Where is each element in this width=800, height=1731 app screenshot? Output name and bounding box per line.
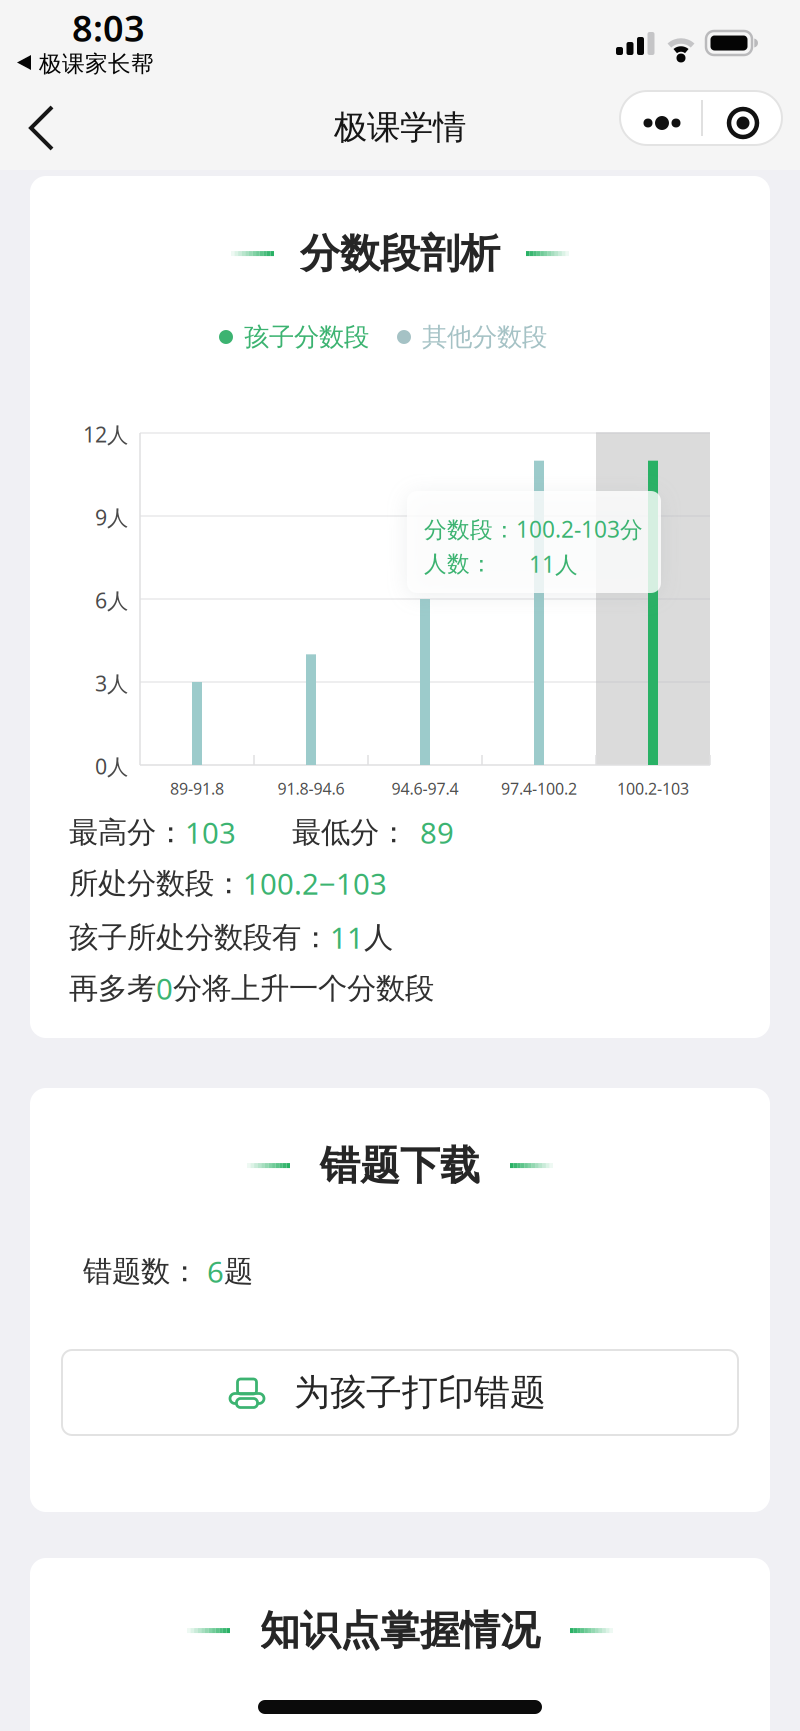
staticText: 91.8-94.6 <box>277 778 344 799</box>
button[interactable] <box>620 91 701 145</box>
staticText: 8:03 <box>72 4 145 52</box>
staticText: 分数段剖析 <box>300 229 500 278</box>
staticText: 0 <box>156 969 173 1008</box>
staticText: 极课学情 <box>334 107 466 148</box>
button[interactable]: 为孩子打印错题 <box>62 1350 800 1731</box>
staticText: 错题下载 <box>320 1141 480 1190</box>
staticText: 97.4-100.2 <box>501 778 577 799</box>
staticText: 100.2-103 <box>617 778 689 799</box>
button[interactable] <box>8 95 78 161</box>
staticText: 9人 <box>95 503 128 531</box>
button[interactable] <box>701 91 782 145</box>
staticText: 极课家长帮 <box>39 50 154 78</box>
staticText: 为孩子打印错题 <box>294 1370 546 1415</box>
button[interactable]: 孩子分数段 <box>219 321 369 352</box>
staticText: 人 <box>364 919 393 955</box>
staticText: 错题数： <box>83 1253 199 1289</box>
staticText: 孩子所处分数段有： <box>69 919 330 955</box>
staticText: 12人 <box>83 420 128 448</box>
staticText: 89 <box>420 813 454 852</box>
staticText: 103 <box>185 813 236 852</box>
staticText: 知识点掌握情况 <box>260 1606 540 1655</box>
staticText: 分数段：100.2-103分 <box>424 514 643 544</box>
button[interactable]: 其他分数段 <box>397 321 547 352</box>
staticText: 最高分： <box>69 814 185 850</box>
staticText: 6人 <box>95 586 128 614</box>
staticText: 100.2−103 <box>243 864 387 903</box>
staticText: 其他分数段 <box>422 321 547 352</box>
staticText: 最低分： <box>292 814 408 850</box>
staticText: 11 <box>330 918 364 957</box>
staticText: 人数： <box>424 550 493 578</box>
staticText: 6 <box>207 1252 224 1291</box>
staticText: 11人 <box>529 549 578 579</box>
staticText: 题 <box>224 1253 253 1289</box>
staticText: 0人 <box>95 752 128 780</box>
staticText: 3人 <box>95 669 128 697</box>
staticText: 94.6-97.4 <box>391 778 458 799</box>
staticText: 所处分数段： <box>69 865 243 901</box>
staticText: 再多考 <box>69 970 156 1006</box>
staticText: 89-91.8 <box>170 778 224 799</box>
staticText: 分将上升一个分数段 <box>173 970 434 1006</box>
staticText: 孩子分数段 <box>244 321 369 352</box>
